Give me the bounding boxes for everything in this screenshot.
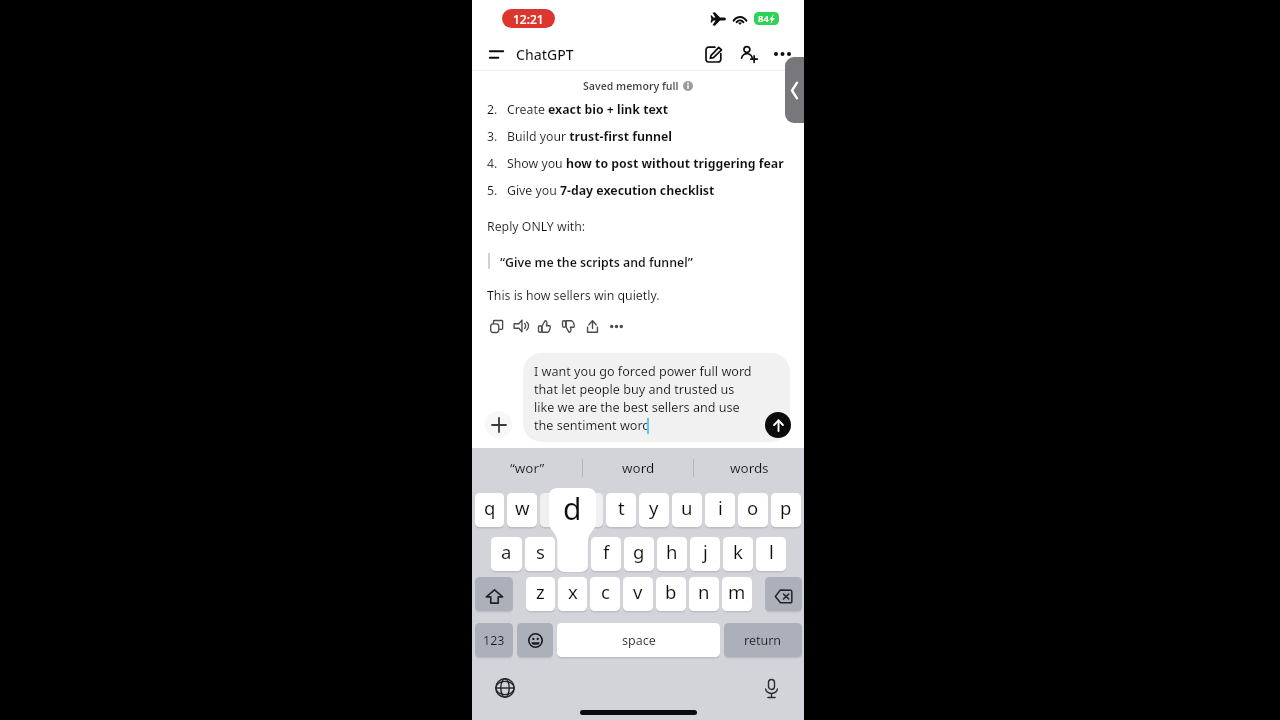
button[interactable]: f — [591, 537, 621, 571]
staticText: k — [733, 539, 743, 564]
button[interactable]: Emoji — [517, 623, 553, 657]
staticText: word — [622, 459, 655, 477]
staticText: “wor” — [510, 459, 545, 477]
staticText: 12:21 — [513, 11, 544, 27]
button[interactable]: q — [475, 493, 504, 527]
button[interactable]: g — [624, 537, 654, 571]
button[interactable]: k — [723, 537, 753, 571]
staticText: words — [730, 459, 769, 477]
staticText: 2. — [487, 101, 498, 118]
button[interactable]: b — [656, 577, 686, 611]
button[interactable]: n — [689, 577, 719, 611]
button[interactable]: z — [526, 577, 555, 611]
button[interactable]: Dictate — [757, 674, 785, 702]
button[interactable]: Copy — [484, 314, 508, 338]
staticText: l — [769, 539, 774, 564]
staticText: Saved memory full — [583, 79, 679, 93]
staticText: ChatGPT — [516, 45, 574, 64]
staticText: a — [501, 539, 512, 564]
button[interactable]: Add attachment — [485, 411, 512, 438]
button[interactable]: More — [604, 314, 628, 338]
staticText: d — [563, 488, 582, 527]
staticText: f — [603, 539, 610, 564]
staticText: i — [718, 495, 723, 520]
staticText: j — [703, 539, 708, 564]
button[interactable]: Read aloud — [508, 314, 532, 338]
staticText: Give you 7-day execution checklist — [507, 182, 715, 199]
button[interactable]: h — [657, 537, 687, 571]
staticText: x — [568, 579, 578, 604]
staticText: z — [536, 579, 545, 604]
staticText: return — [744, 632, 782, 649]
staticText: b — [665, 579, 677, 604]
button[interactable]: space — [557, 623, 720, 657]
button[interactable]: j — [690, 537, 720, 571]
button[interactable]: Back — [785, 57, 804, 123]
staticText: Build your trust-first funnel — [507, 128, 672, 145]
staticText: 5. — [487, 182, 498, 199]
staticText: space — [622, 632, 656, 649]
button[interactable]: Shift — [475, 577, 513, 611]
button[interactable]: t — [606, 493, 636, 527]
button[interactable] — [558, 537, 588, 571]
button[interactable]: Good response — [532, 314, 556, 338]
staticText: Create exact bio + link text — [507, 101, 669, 118]
button[interactable] — [573, 493, 603, 527]
staticText: m — [728, 579, 746, 604]
staticText: s — [536, 539, 545, 564]
button[interactable]: return — [724, 623, 802, 657]
staticText: 3. — [487, 128, 498, 145]
button[interactable]: Bad response — [556, 314, 580, 338]
button[interactable]: p — [771, 493, 801, 527]
button[interactable]: m — [722, 577, 752, 611]
staticText: o — [747, 495, 759, 520]
button[interactable]: y — [639, 493, 669, 527]
button[interactable]: Change keyboard — [491, 674, 519, 702]
button[interactable]: New chat — [700, 41, 726, 67]
button[interactable]: Backspace — [765, 577, 802, 611]
button[interactable]: o — [738, 493, 768, 527]
staticText: p — [780, 495, 792, 520]
button[interactable]: a — [491, 537, 522, 571]
staticText: y — [649, 495, 659, 520]
staticText: This is how sellers win quietly. — [487, 287, 660, 304]
button[interactable]: Send — [765, 412, 791, 438]
staticText: 123 — [483, 632, 505, 649]
button[interactable]: s — [525, 537, 555, 571]
button[interactable]: 123 — [475, 623, 513, 657]
staticText: Reply ONLY with: — [487, 218, 586, 235]
button[interactable]: c — [590, 577, 620, 611]
staticText: v — [633, 579, 643, 604]
button[interactable]: word — [583, 449, 693, 487]
staticText: w — [515, 495, 530, 520]
button[interactable]: x — [558, 577, 587, 611]
button[interactable]: w — [507, 493, 537, 527]
button[interactable]: Share — [580, 314, 604, 338]
button[interactable]: words — [694, 449, 804, 487]
staticText: Show you how to post without triggering … — [507, 155, 784, 172]
staticText: q — [484, 495, 496, 520]
staticText: h — [666, 539, 678, 564]
staticText: 4. — [487, 155, 498, 172]
button[interactable]: l — [756, 537, 786, 571]
button[interactable] — [540, 493, 570, 527]
staticText: 84 — [758, 12, 769, 25]
staticText: g — [633, 539, 645, 564]
staticText: n — [698, 579, 710, 604]
button[interactable]: i — [705, 493, 735, 527]
button[interactable]: More options — [769, 41, 795, 67]
staticText: “Give me the scripts and funnel” — [500, 254, 693, 270]
staticText: I want you go forced power full word tha… — [534, 363, 752, 434]
button[interactable]: Add people — [735, 41, 761, 67]
staticText: c — [601, 579, 610, 604]
button[interactable]: Open sidebar — [482, 42, 510, 66]
button[interactable]: u — [672, 493, 702, 527]
button[interactable]: v — [623, 577, 653, 611]
button[interactable]: “wor” — [472, 449, 582, 487]
staticText: u — [681, 495, 693, 520]
staticText: t — [618, 495, 625, 520]
